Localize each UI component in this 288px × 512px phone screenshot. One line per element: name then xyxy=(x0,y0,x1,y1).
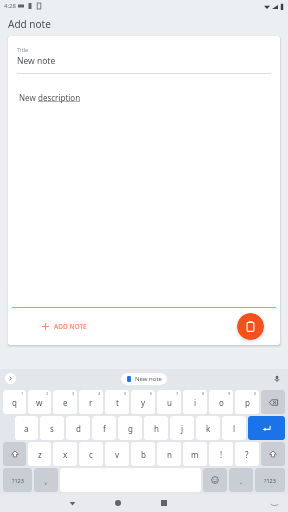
staticText: y xyxy=(141,397,146,408)
staticText: b xyxy=(141,449,146,460)
staticText: s xyxy=(50,423,54,434)
button[interactable]: Shift xyxy=(261,442,285,466)
staticText: j xyxy=(181,423,184,434)
button[interactable]: c xyxy=(79,442,103,466)
button[interactable]: i xyxy=(183,390,207,414)
button[interactable]: j xyxy=(170,416,194,440)
staticText: p xyxy=(245,397,250,408)
button[interactable]: Emoji xyxy=(203,468,227,492)
staticText: New note xyxy=(17,55,56,67)
staticText: a xyxy=(24,423,29,434)
staticText: 5 xyxy=(124,391,127,396)
staticText: c xyxy=(89,449,93,460)
button[interactable]: ?123 xyxy=(3,468,32,492)
staticText: r xyxy=(89,397,93,408)
button[interactable]: ?123 xyxy=(255,468,285,492)
button[interactable]: o xyxy=(209,390,233,414)
staticText: v xyxy=(115,449,120,460)
staticText: g xyxy=(128,423,133,434)
staticText: 9 xyxy=(228,391,231,396)
staticText: 6 xyxy=(150,391,153,396)
staticText: f xyxy=(103,423,106,434)
staticText: h xyxy=(154,423,159,434)
staticText: z xyxy=(38,449,42,460)
staticText: d xyxy=(76,423,81,434)
staticText: 3 xyxy=(72,391,75,396)
staticText: 0 xyxy=(254,391,257,396)
staticText: w xyxy=(36,397,43,408)
button[interactable]: Recent apps xyxy=(157,496,171,510)
staticText: ! xyxy=(220,449,223,460)
button[interactable]: y xyxy=(131,390,155,414)
staticText: u xyxy=(167,397,172,408)
button[interactable]: x xyxy=(53,442,77,466)
button[interactable]: q xyxy=(3,390,26,414)
button[interactable]: h xyxy=(144,416,168,440)
staticText: 4 xyxy=(98,391,101,396)
staticText: q xyxy=(12,397,17,408)
staticText: ? xyxy=(245,449,249,460)
button[interactable]: p xyxy=(235,390,259,414)
button[interactable]: d xyxy=(66,416,90,440)
button[interactable]: Voice input xyxy=(272,374,282,384)
staticText: ?123 xyxy=(12,477,24,484)
staticText: ADD NOTE xyxy=(54,322,87,331)
button[interactable]: n xyxy=(157,442,181,466)
button[interactable]: b xyxy=(131,442,155,466)
button[interactable]: z xyxy=(28,442,51,466)
button[interactable]: Save note xyxy=(237,313,264,340)
button[interactable]: ? xyxy=(235,442,259,466)
button[interactable]: t xyxy=(105,390,129,414)
button[interactable]: Shift xyxy=(3,442,26,466)
staticText: k xyxy=(206,423,211,434)
button[interactable]: g xyxy=(118,416,142,440)
button[interactable]: a xyxy=(15,416,38,440)
staticText: Title xyxy=(17,46,28,53)
button[interactable]: m xyxy=(183,442,207,466)
button[interactable]: s xyxy=(40,416,64,440)
staticText: l xyxy=(233,423,236,434)
staticText: 2 xyxy=(46,391,49,396)
staticText: e xyxy=(63,397,68,408)
button[interactable]: ADD NOTE xyxy=(38,318,91,335)
staticText: description xyxy=(38,92,81,103)
button[interactable]: Backspace xyxy=(261,390,285,414)
staticText: 4:28 xyxy=(4,2,16,10)
staticText: m xyxy=(191,449,199,460)
staticText: New xyxy=(19,92,38,103)
staticText: 1 xyxy=(21,391,24,396)
staticText: n xyxy=(167,449,172,460)
button[interactable]: f xyxy=(92,416,116,440)
staticText: t xyxy=(116,397,119,408)
staticText: , xyxy=(45,475,48,486)
button[interactable]: Keyboard switcher xyxy=(268,497,280,509)
staticText: Add note xyxy=(8,17,51,31)
button[interactable]: l xyxy=(222,416,246,440)
button[interactable]: New note xyxy=(121,373,167,385)
button[interactable]: Enter xyxy=(248,416,285,440)
button[interactable]: v xyxy=(105,442,129,466)
button[interactable]: u xyxy=(157,390,181,414)
staticText: ?123 xyxy=(264,477,276,484)
button[interactable]: . xyxy=(229,468,253,492)
button[interactable]: ! xyxy=(209,442,233,466)
staticText: . xyxy=(240,475,243,486)
staticText: New note xyxy=(135,375,162,383)
button[interactable]: w xyxy=(28,390,51,414)
staticText: x xyxy=(63,449,68,460)
button[interactable]: Back xyxy=(65,496,79,510)
staticText: 8 xyxy=(202,391,205,396)
button[interactable]: k xyxy=(196,416,220,440)
button[interactable]: Home xyxy=(111,496,125,510)
button[interactable]: Expand xyxy=(5,373,16,384)
staticText: i xyxy=(194,397,197,408)
button[interactable]: r xyxy=(79,390,103,414)
button[interactable]: e xyxy=(53,390,77,414)
staticText: o xyxy=(219,397,224,408)
staticText: 7 xyxy=(176,391,179,396)
button[interactable]: , xyxy=(34,468,58,492)
